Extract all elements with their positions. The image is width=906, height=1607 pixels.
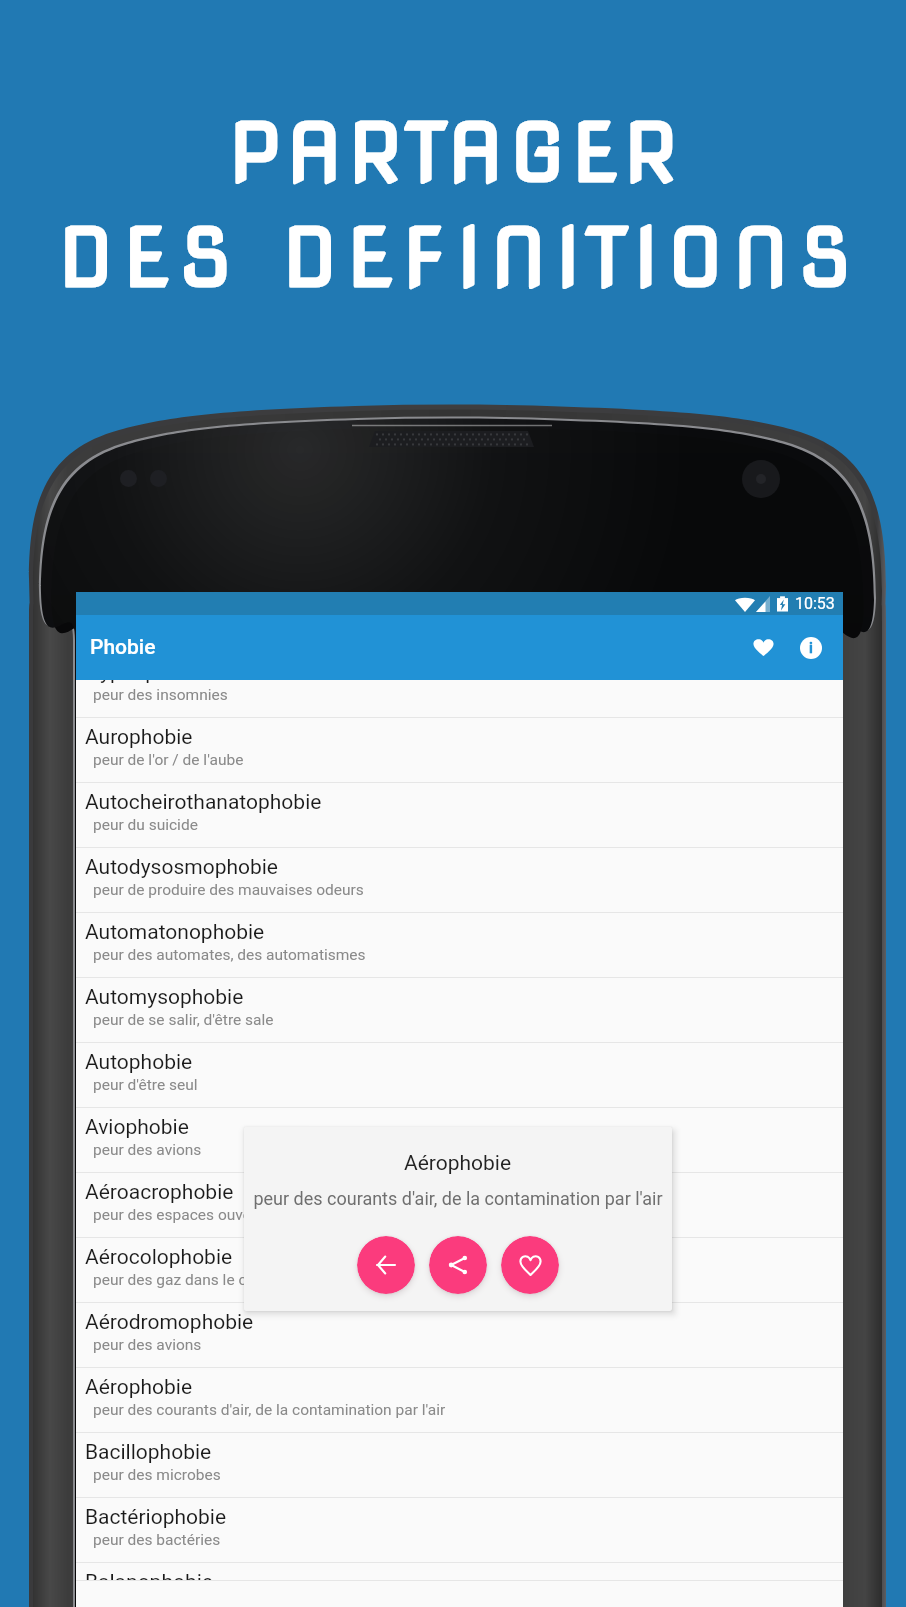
- staticText: Aérodromophobie: [85, 1310, 254, 1335]
- staticText: peur des courants d'air, de la contamina…: [253, 1188, 663, 1209]
- staticText: Hypnophobie: [85, 680, 209, 685]
- button[interactable]: Automysophobie: [76, 978, 843, 1043]
- staticText: peur des avions: [93, 1141, 202, 1159]
- staticText: Automatonophobie: [85, 920, 265, 945]
- staticText: peur d'être seul: [93, 1076, 198, 1094]
- staticText: peur des gaz dans le côlon: [93, 1271, 277, 1289]
- button[interactable]: Aviophobie: [76, 1108, 843, 1173]
- button[interactable]: Autophobie: [76, 1043, 843, 1108]
- staticText: Bactériophobie: [85, 1505, 227, 1530]
- button[interactable]: Information: [787, 615, 835, 680]
- button[interactable]: Partager: [429, 1236, 487, 1294]
- staticText: peur de produire des mauvaises odeurs: [93, 881, 364, 899]
- staticText: peur des espaces ouverts en hauteur: [93, 1206, 347, 1224]
- staticText: peur des bactéries: [93, 1531, 221, 1549]
- staticText: Bacillophobie: [85, 1440, 212, 1465]
- button[interactable]: Ajouter aux favoris: [501, 1236, 559, 1294]
- staticText: Aurophobie: [85, 725, 193, 750]
- staticText: peur du suicide: [93, 816, 198, 834]
- button[interactable]: Balanophobie: [76, 1563, 843, 1581]
- button[interactable]: Retour: [357, 1236, 415, 1294]
- staticText: DES DEFINITIONS: [59, 209, 861, 306]
- staticText: PARTAGER: [229, 104, 685, 201]
- staticText: peur des microbes: [93, 1466, 221, 1484]
- staticText: 10:53: [795, 594, 835, 613]
- staticText: Balanophobie: [85, 1570, 213, 1581]
- staticText: Phobie: [90, 635, 156, 660]
- staticText: peur des avions: [93, 1336, 202, 1354]
- staticText: peur des automates, des automatismes: [93, 946, 366, 964]
- staticText: Autocheirothanatophobie: [85, 790, 322, 815]
- staticText: Aérocolophobie: [85, 1245, 233, 1270]
- button[interactable]: Aérophobie: [76, 1368, 843, 1433]
- staticText: Autodysosmophobie: [85, 855, 278, 880]
- button[interactable]: Aurophobie: [76, 718, 843, 783]
- staticText: Aéroacrophobie: [85, 1180, 234, 1205]
- staticText: Aérophobie: [404, 1151, 512, 1176]
- button[interactable]: Bactériophobie: [76, 1498, 843, 1563]
- button[interactable]: Aérodromophobie: [76, 1303, 843, 1368]
- button[interactable]: Autodysosmophobie: [76, 848, 843, 913]
- staticText: DES DEFINITIONS: [59, 209, 861, 306]
- staticText: Aérophobie: [85, 1375, 193, 1400]
- button[interactable]: Aérocolophobie: [76, 1238, 843, 1303]
- button[interactable]: Hypnophobie: [76, 680, 843, 718]
- staticText: peur des insomnies: [93, 686, 228, 704]
- staticText: Aviophobie: [85, 1115, 189, 1140]
- button[interactable]: Automatonophobie: [76, 913, 843, 978]
- button[interactable]: Aéroacrophobie: [76, 1173, 843, 1238]
- staticText: peur des courants d'air, de la contamina…: [93, 1401, 446, 1419]
- button[interactable]: Favoris: [739, 615, 787, 680]
- button[interactable]: Bacillophobie: [76, 1433, 843, 1498]
- staticText: i: [809, 639, 813, 657]
- staticText: PARTAGER: [229, 104, 685, 201]
- staticText: Automysophobie: [85, 985, 244, 1010]
- staticText: peur de l'or / de l'aube: [93, 751, 244, 769]
- staticText: peur de se salir, d'être sale: [93, 1011, 274, 1029]
- staticText: Autophobie: [85, 1050, 193, 1075]
- button[interactable]: Autocheirothanatophobie: [76, 783, 843, 848]
